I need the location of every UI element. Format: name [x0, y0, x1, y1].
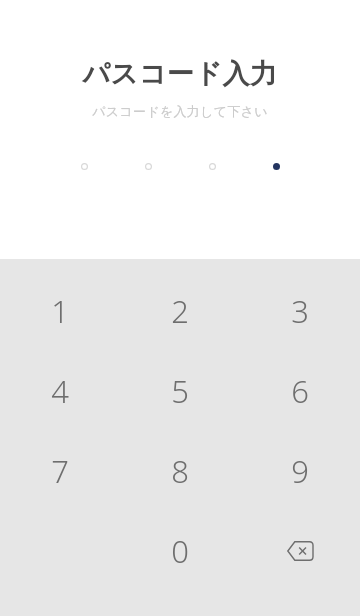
button[interactable]: 3	[240, 281, 360, 341]
staticText: 1	[51, 290, 69, 332]
staticText: 8	[171, 450, 189, 492]
staticText: 3	[291, 290, 309, 332]
staticText: 4	[51, 370, 69, 412]
staticText: 6	[291, 370, 309, 412]
button[interactable]: 2	[120, 281, 240, 341]
staticText: パスコード入力	[82, 57, 278, 91]
button[interactable]: 4	[0, 361, 120, 421]
button[interactable]: Backspace	[240, 521, 360, 581]
button[interactable]: 8	[120, 441, 240, 501]
staticText: 9	[291, 450, 309, 492]
staticText: パスコードを入力して下さい	[92, 103, 268, 119]
button[interactable]: 7	[0, 441, 120, 501]
staticText: 0	[171, 530, 189, 572]
button[interactable]: 1	[0, 281, 120, 341]
staticText: 5	[171, 370, 189, 412]
button[interactable]: 5	[120, 361, 240, 421]
staticText: 7	[51, 450, 69, 492]
button[interactable]: 6	[240, 361, 360, 421]
staticText: 2	[171, 290, 189, 332]
button[interactable]: 9	[240, 441, 360, 501]
button[interactable]: 0	[120, 521, 240, 581]
